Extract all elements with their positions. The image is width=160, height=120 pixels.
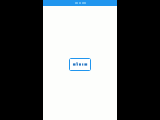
button[interactable]: Action xyxy=(69,58,91,71)
